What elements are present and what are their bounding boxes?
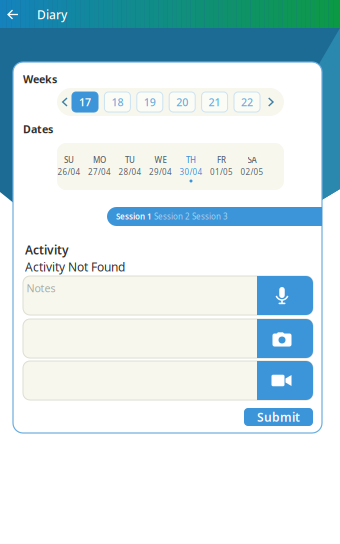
button[interactable]: Back <box>0 1 26 27</box>
button[interactable]: Submit <box>244 408 313 426</box>
staticText: Weeks <box>23 72 57 86</box>
button[interactable]: FR <box>206 143 236 190</box>
staticText: Session 2 <box>154 211 190 222</box>
button[interactable]: WE <box>145 143 175 190</box>
staticText: 26/04 <box>57 167 80 177</box>
staticText: Dates <box>23 122 53 136</box>
staticText: WE <box>154 155 166 165</box>
staticText: 02/05 <box>240 167 263 177</box>
staticText: 29/04 <box>149 167 172 177</box>
staticText: Activity Not Found <box>25 259 125 275</box>
button[interactable]: Record audio <box>257 276 313 315</box>
staticText: Diary <box>37 6 67 22</box>
staticText: 21 <box>209 95 221 109</box>
staticText: 22 <box>241 95 253 109</box>
staticText: 30/04 <box>179 167 202 177</box>
staticText: 28/04 <box>118 167 141 177</box>
button[interactable]: Next week <box>265 92 277 112</box>
button[interactable]: 18 <box>104 92 130 112</box>
staticText: SA <box>247 155 256 165</box>
staticText: SU <box>64 155 74 165</box>
staticText: TH <box>186 155 196 165</box>
staticText: 19 <box>144 95 156 109</box>
button[interactable]: Session 2 <box>149 207 195 226</box>
button[interactable]: TU <box>115 143 145 190</box>
staticText: 18 <box>111 95 123 109</box>
staticText: Session 3 <box>192 211 228 222</box>
button[interactable]: MO <box>84 143 114 190</box>
button[interactable]: TH <box>176 143 206 190</box>
button[interactable]: Take photo <box>257 319 313 358</box>
staticText: Activity <box>25 242 69 258</box>
staticText: 27/04 <box>88 167 111 177</box>
button[interactable]: Record video <box>257 361 313 400</box>
staticText: MO <box>93 155 106 165</box>
staticText: FR <box>217 155 226 165</box>
button[interactable]: 22 <box>234 92 260 112</box>
staticText: Notes <box>26 281 55 295</box>
staticText: 20 <box>176 95 188 109</box>
button[interactable]: SA <box>237 143 267 190</box>
staticText: TU <box>125 155 135 165</box>
staticText: Session 1 <box>116 211 152 222</box>
button[interactable]: Session 3 <box>187 207 233 226</box>
staticText: Submit <box>257 409 300 425</box>
button[interactable]: SU <box>54 143 84 190</box>
button[interactable]: Session 1 <box>111 207 157 226</box>
staticText: 17 <box>79 95 91 109</box>
button[interactable]: 21 <box>202 92 228 112</box>
button[interactable]: 19 <box>137 92 163 112</box>
button[interactable]: Previous week <box>59 92 71 112</box>
button[interactable]: 17 <box>72 92 98 112</box>
button[interactable]: 20 <box>169 92 195 112</box>
staticText: 01/05 <box>210 167 233 177</box>
